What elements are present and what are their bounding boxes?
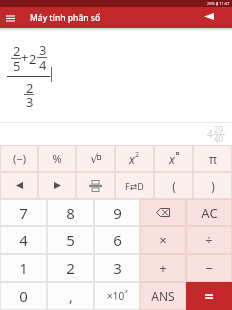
button[interactable] (38, 172, 76, 199)
staticText: AC (201, 204, 218, 222)
staticText: 9 (113, 203, 122, 223)
staticText: % (52, 151, 62, 166)
button[interactable]: 0 (0, 282, 47, 310)
staticText: 7 (19, 203, 28, 223)
staticText: 1 (19, 258, 28, 278)
staticText: 3 (39, 41, 47, 59)
button[interactable]: ) (193, 172, 232, 199)
button[interactable]: 5 (47, 226, 94, 254)
staticText: 2 (135, 150, 140, 160)
staticText: 29% ▮ 11:07 (207, 1, 230, 6)
staticText: 5 (66, 230, 75, 250)
staticText: 3 (113, 258, 122, 278)
button[interactable]: √ (76, 145, 115, 172)
button[interactable]: 4 (0, 226, 47, 254)
button[interactable] (204, 13, 214, 20)
staticText: 2 (26, 79, 34, 97)
button[interactable] (76, 172, 115, 199)
staticText: 4 (39, 56, 47, 74)
button[interactable]: % (38, 145, 76, 172)
staticText: 0 (19, 286, 28, 306)
button[interactable]: ( (154, 172, 193, 199)
staticText: 29 (214, 124, 224, 135)
staticText: 5 (13, 57, 21, 75)
staticText: π (209, 151, 217, 167)
staticText: 3 (26, 93, 34, 111)
button[interactable]: ×10 (94, 282, 140, 310)
staticText: 4 (19, 230, 28, 250)
staticText: 2 (66, 258, 75, 278)
staticText: ( (172, 178, 176, 194)
button[interactable]: 6 (94, 226, 140, 254)
staticText: (−) (13, 151, 26, 166)
staticText: 4 (207, 127, 213, 141)
button[interactable]: AC (186, 199, 232, 226)
staticText: + (159, 259, 167, 277)
button[interactable]: 1 (0, 254, 47, 282)
staticText: − (205, 259, 213, 277)
button[interactable]: F⇄D (115, 172, 154, 199)
button[interactable]: ANS (140, 282, 186, 310)
staticText: √ (90, 152, 98, 166)
staticText: F⇄D (125, 180, 144, 192)
button[interactable]: − (186, 254, 232, 282)
staticText: ) (211, 178, 215, 194)
button[interactable] (140, 199, 186, 226)
button[interactable]: ÷ (186, 226, 232, 254)
staticText: 40 (214, 133, 224, 144)
staticText: ÷ (205, 231, 213, 249)
button[interactable]: 8 (47, 199, 94, 226)
button[interactable]: 2 (47, 254, 94, 282)
staticText: 2 (13, 42, 21, 60)
button[interactable]: π (193, 145, 232, 172)
button[interactable]: 3 (94, 254, 140, 282)
staticText: 2 (29, 50, 37, 68)
button[interactable]: + (140, 254, 186, 282)
button[interactable]: , (47, 282, 94, 310)
staticText: × (159, 231, 167, 249)
staticText: x (129, 151, 135, 167)
staticText: 8 (66, 203, 75, 223)
button[interactable]: 9 (94, 199, 140, 226)
button[interactable]: (−) (0, 145, 38, 172)
staticText: Máy tính phân số (30, 12, 101, 24)
button[interactable]: × (140, 226, 186, 254)
staticText: = (204, 285, 214, 307)
staticText: ANS (151, 288, 175, 304)
staticText: 6 (113, 230, 122, 250)
staticText: + (21, 48, 29, 66)
button[interactable]: = (186, 282, 232, 310)
staticText: , (69, 287, 73, 306)
button[interactable]: x (115, 145, 154, 172)
button[interactable] (0, 172, 38, 199)
button[interactable]: 7 (0, 199, 47, 226)
button[interactable]: x (154, 145, 193, 172)
staticText: x (169, 151, 175, 167)
staticText: x (125, 287, 128, 295)
staticText: ×10 (107, 289, 125, 303)
button[interactable] (6, 14, 15, 22)
